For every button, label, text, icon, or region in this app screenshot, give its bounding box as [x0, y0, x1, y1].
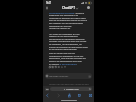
button[interactable]: Back: [44, 92, 50, 98]
button[interactable]: Account: [86, 5, 91, 10]
button[interactable]: ChatGPT: [62, 6, 78, 10]
staticText: utilisent un ton generalement: [49, 35, 78, 38]
button[interactable]: Reload: [89, 88, 91, 90]
button[interactable]: chatgpt.com: [50, 87, 92, 91]
button[interactable]: Bad response: [54, 65, 57, 68]
staticText: en visitant la documentation.: [49, 63, 77, 66]
staticText: ChatGPT peut faire des erreurs. Verifiez…: [49, 83, 89, 85]
staticText: discussions, vous pouvez consulter les: [49, 57, 86, 60]
staticText: 9:41: [46, 1, 52, 5]
staticText: Message ChatGPT: [49, 75, 69, 78]
button[interactable]: Tabs: [87, 92, 93, 98]
button[interactable]: Share: [66, 92, 72, 98]
button[interactable]: Good response: [51, 65, 54, 68]
staticText: demonstratif et permettent d'obtenir des: [49, 38, 88, 41]
staticText: des critiques sur les fonctionnalites: [49, 22, 83, 25]
button[interactable]: Voice mode: [88, 75, 91, 78]
staticText: ChatGPT: [62, 6, 75, 10]
staticText: continuite et abordant les sujets utiles: [49, 17, 86, 20]
staticText: Documentation technique : l'ecriture: [49, 12, 85, 15]
button[interactable]: Regenerate: [60, 65, 63, 68]
staticText: specifiques du site web.: [49, 25, 72, 28]
staticText: forums de developpeurs ainsi que: [49, 60, 82, 63]
button[interactable]: Page settings: [45, 88, 49, 91]
button[interactable]: Open sidebar: [44, 5, 49, 10]
staticText: encore de synthese de documents longs: [49, 46, 88, 49]
button[interactable]: Copy: [48, 65, 51, 68]
staticText: resultats convaincants pour des taches: [49, 40, 87, 43]
staticText: et de resumes automatiques.: [49, 48, 78, 51]
button[interactable]: Forward: [55, 92, 61, 98]
button[interactable]: Read aloud: [57, 65, 60, 68]
staticText: AA: [46, 88, 49, 91]
staticText: egalement aux discussions de: [49, 14, 78, 17]
button[interactable]: Share: [63, 65, 66, 68]
staticText: dont de l'organisation interne du forum: [49, 19, 88, 22]
staticText: Pour en savoir plus sur nos: [49, 52, 76, 55]
staticText: de redaction, ou de traduction, ou: [49, 43, 82, 46]
staticText: Les outils qui s'appuient sur ces modele…: [49, 33, 88, 36]
staticText: chatgpt.com: [66, 88, 79, 91]
staticText: contributions specifiques et sur nos: [49, 55, 84, 58]
button[interactable]: Bookmarks: [76, 92, 82, 98]
button[interactable]: Add attachment: [45, 73, 92, 79]
staticText: Laissez vos retours ici.: [49, 27, 71, 30]
